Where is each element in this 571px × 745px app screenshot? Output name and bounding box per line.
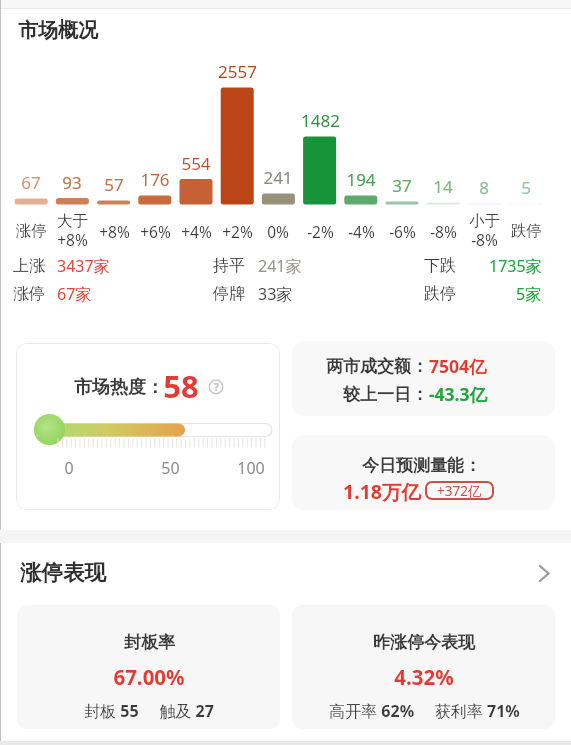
staticText: 554 (181, 152, 211, 175)
staticText: 跌停 (424, 284, 456, 304)
staticText: 5 (521, 176, 531, 199)
staticText: 0 (64, 457, 74, 479)
staticText: +8% (99, 221, 130, 242)
button[interactable] (16, 343, 280, 510)
staticText: 昨涨停今表现 (373, 632, 475, 653)
staticText: 8 (479, 176, 489, 199)
staticText: 停牌 (213, 284, 245, 304)
staticText: 持平 (213, 256, 245, 276)
staticText: 跌停 (511, 221, 542, 241)
button[interactable] (292, 605, 555, 729)
staticText: -4% (348, 221, 375, 242)
staticText: 4.32% (394, 663, 454, 691)
staticText: -8% (430, 221, 457, 242)
staticText: 封板 55 触及 27 (84, 700, 214, 722)
staticText: 67 (21, 171, 41, 194)
button[interactable] (292, 435, 555, 510)
button[interactable] (292, 341, 555, 416)
staticText: -43.3亿 (429, 382, 488, 406)
staticText: ? (214, 380, 219, 394)
staticText: 7504亿 (429, 354, 487, 378)
staticText: 241 (263, 166, 293, 189)
staticText: 3437家 (57, 255, 110, 277)
staticText: 封板率 (124, 632, 175, 653)
staticText: 1735家 (489, 255, 542, 277)
staticText: +4% (181, 221, 212, 242)
staticText: 5家 (516, 283, 542, 305)
staticText: 241家 (258, 255, 302, 277)
staticText: 市场热度： (74, 376, 164, 399)
staticText: 176 (140, 168, 170, 191)
staticText: 1.18万亿 (343, 478, 421, 505)
staticText: 今日预测量能： (362, 455, 481, 476)
staticText: 33家 (258, 283, 293, 305)
staticText: 涨停表现 (20, 559, 106, 586)
staticText: 涨停 (16, 221, 47, 241)
staticText: 57 (104, 173, 124, 196)
button[interactable] (533, 563, 555, 585)
staticText: +6% (140, 221, 171, 242)
staticText: 1482 (301, 109, 340, 132)
staticText: 67.00% (113, 663, 185, 691)
button[interactable] (17, 605, 280, 729)
staticText: 两市成交额： (326, 356, 428, 377)
staticText: -2% (307, 221, 334, 242)
staticText: 涨停 (13, 284, 45, 304)
staticText: 大于 +8% (57, 211, 88, 251)
staticText: 下跌 (424, 256, 456, 276)
staticText: +372亿 (437, 482, 482, 500)
staticText: 50 (161, 457, 180, 479)
staticText: 上涨 (13, 256, 45, 276)
staticText: 14 (433, 175, 453, 198)
staticText: +2% (222, 221, 253, 242)
staticText: 市场概况 (18, 18, 98, 43)
staticText: 小于 -8% (469, 211, 500, 251)
staticText: 58 (163, 365, 199, 407)
staticText: 37 (392, 174, 412, 197)
staticText: -6% (389, 221, 416, 242)
staticText: 较上一日： (343, 384, 428, 405)
staticText: 93 (62, 171, 82, 194)
staticText: 高开率 62% 获利率 71% (329, 700, 520, 722)
staticText: 100 (237, 457, 265, 479)
staticText: 67家 (57, 283, 92, 305)
staticText: 194 (346, 168, 376, 191)
staticText: 0% (267, 221, 289, 242)
staticText: 2557 (218, 60, 257, 83)
